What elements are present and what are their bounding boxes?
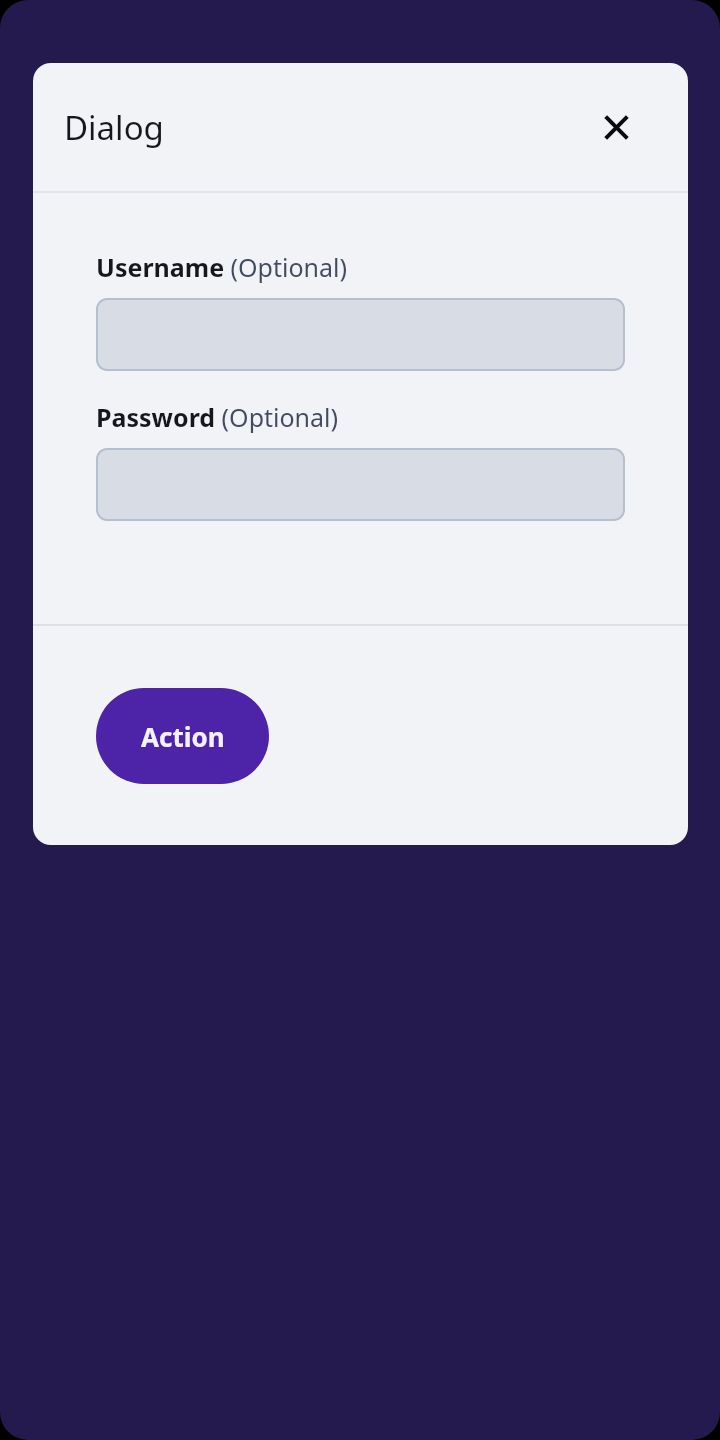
button[interactable]: Text input xyxy=(96,298,625,371)
button[interactable]: Close xyxy=(592,103,640,151)
staticText: Password (Optional) xyxy=(96,400,339,434)
staticText: Username (Optional) xyxy=(96,250,348,284)
button[interactable]: Text input xyxy=(96,448,625,521)
button[interactable]: Action xyxy=(96,688,269,784)
staticText: Dialog xyxy=(64,105,164,150)
staticText: Action xyxy=(141,719,225,754)
